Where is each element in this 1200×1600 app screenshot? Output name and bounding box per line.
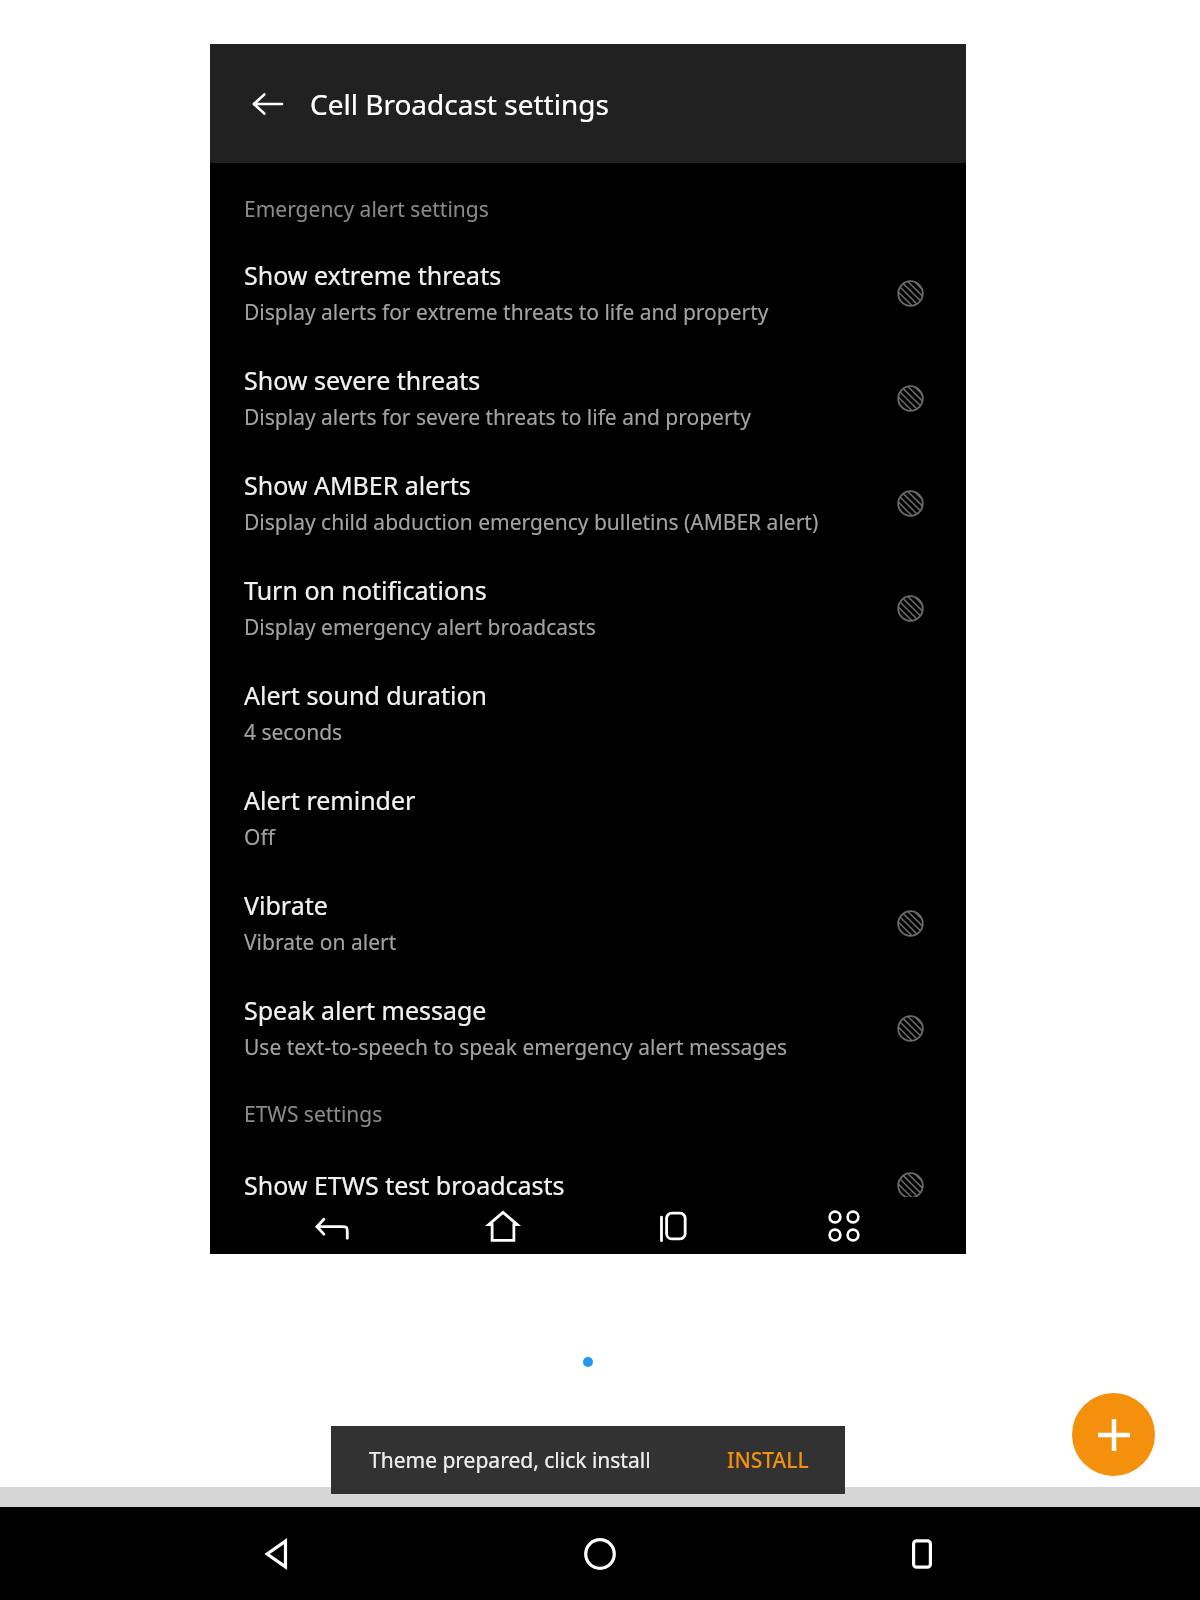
staticText: Display child abduction emergency bullet…	[244, 508, 819, 537]
button[interactable]: Speak alert message	[210, 977, 966, 1082]
button[interactable]: Turn on notifications	[210, 557, 966, 662]
staticText: Display alerts for extreme threats to li…	[244, 298, 769, 327]
staticText: Display alerts for severe threats to lif…	[244, 403, 751, 432]
staticText: 4 seconds	[244, 718, 343, 747]
staticText: Vibrate	[244, 888, 328, 922]
staticText: INSTALL	[727, 1446, 809, 1475]
staticText: Alert reminder	[244, 783, 416, 817]
button[interactable]: Show AMBER alerts	[210, 452, 966, 557]
staticText: Alert sound duration	[244, 678, 487, 712]
button[interactable]: Toggle Show severe threats	[888, 376, 932, 420]
button[interactable]: INSTALL	[727, 1446, 809, 1475]
staticText: Emergency alert settings	[244, 195, 489, 224]
button[interactable]: Recents	[625, 1197, 721, 1254]
button[interactable]: Toggle Show extreme threats	[888, 271, 932, 315]
staticText: Theme prepared, click install	[369, 1446, 651, 1475]
staticText: Off	[244, 823, 275, 852]
staticText: ETWS settings	[244, 1100, 383, 1129]
button[interactable]: Alert sound duration	[210, 662, 966, 767]
button[interactable]: Home	[455, 1197, 551, 1254]
button[interactable]: Theme prepared, click install	[331, 1426, 845, 1494]
staticText: Display emergency alert broadcasts	[244, 613, 596, 642]
staticText: Show AMBER alerts	[244, 468, 471, 502]
button[interactable]: Home	[552, 1525, 648, 1582]
button[interactable]: Recents	[874, 1525, 970, 1582]
button[interactable]: Back	[244, 80, 292, 128]
button[interactable]: Toggle Show ETWS test broadcasts	[888, 1163, 932, 1207]
staticText: Show severe threats	[244, 363, 481, 397]
staticText: Speak alert message	[244, 993, 487, 1027]
button[interactable]: Toggle Show AMBER alerts	[888, 481, 932, 525]
staticText: Use text-to-speech to speak emergency al…	[244, 1033, 788, 1062]
button[interactable]: Toggle Vibrate	[888, 901, 932, 945]
button[interactable]: Apps	[796, 1197, 892, 1254]
button[interactable]: Back	[284, 1197, 380, 1254]
button[interactable]: Show ETWS test broadcasts	[210, 1147, 966, 1227]
staticText: Cell Broadcast settings	[310, 85, 609, 123]
button[interactable]: Toggle Speak alert message	[888, 1006, 932, 1050]
staticText: Turn on notifications	[244, 573, 487, 607]
button[interactable]: Show severe threats	[210, 347, 966, 452]
button[interactable]: Alert reminder	[210, 767, 966, 872]
button[interactable]: Show extreme threats	[210, 242, 966, 347]
button[interactable]: Add	[1072, 1393, 1155, 1476]
staticText: Vibrate on alert	[244, 928, 397, 957]
button[interactable]: Back	[230, 1525, 326, 1582]
button[interactable]: Vibrate	[210, 872, 966, 977]
staticText: Show extreme threats	[244, 258, 502, 292]
staticText: Show ETWS test broadcasts	[244, 1168, 565, 1202]
button[interactable]: Toggle Turn on notifications	[888, 586, 932, 630]
